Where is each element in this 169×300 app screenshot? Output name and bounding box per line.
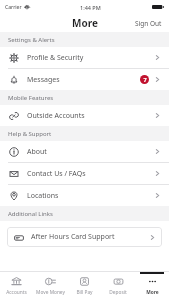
staticText: Move Money — [36, 289, 65, 296]
staticText: Outside Accounts — [27, 111, 85, 121]
staticText: Contact Us / FAQs — [27, 169, 86, 179]
staticText: Accounts — [6, 289, 27, 296]
staticText: Bill Pay — [76, 289, 93, 296]
staticText: Deposit — [109, 289, 127, 296]
staticText: More — [146, 289, 159, 296]
button[interactable]: More — [135, 272, 169, 300]
button[interactable]: About — [0, 141, 169, 162]
button[interactable]: Move Money — [33, 272, 67, 300]
button[interactable]: Messages — [0, 69, 169, 90]
staticText: Profile & Security — [27, 53, 84, 63]
staticText: Additional Links — [8, 210, 53, 218]
button[interactable]: Contact Us / FAQs — [0, 163, 169, 184]
staticText: Sign Out — [135, 19, 162, 28]
other: Bill Pay — [79, 276, 90, 287]
staticText: 1:44 PM — [80, 4, 101, 11]
other: Accounts — [11, 276, 22, 287]
staticText: More — [72, 16, 98, 30]
staticText: Carrier — [5, 4, 22, 11]
staticText: After Hours Card Support — [31, 232, 115, 242]
staticText: Mobile Features — [8, 94, 54, 102]
button[interactable]: Accounts — [0, 272, 33, 300]
button[interactable]: Sign Out — [128, 16, 169, 31]
other: Deposit — [113, 276, 124, 287]
button[interactable]: Profile & Security — [0, 47, 169, 68]
staticText: Help & Support — [8, 130, 52, 138]
staticText: Locations — [27, 191, 59, 201]
button[interactable]: Deposit — [101, 272, 135, 300]
button[interactable]: Outside Accounts — [0, 105, 169, 126]
other: More — [147, 276, 158, 287]
button[interactable]: Locations — [0, 185, 169, 206]
button[interactable]: After Hours Card Support — [7, 227, 162, 247]
staticText: About — [27, 147, 47, 157]
staticText: 7 — [143, 76, 147, 83]
staticText: Messages — [27, 75, 60, 85]
button[interactable]: Bill Pay — [67, 272, 101, 300]
staticText: Settings & Alerts — [8, 36, 55, 44]
other: Move Money — [45, 276, 56, 287]
